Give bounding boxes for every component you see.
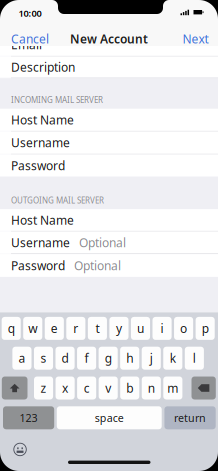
button[interactable]: g: [99, 347, 118, 370]
staticText: Username: [11, 135, 70, 151]
staticText: u: [137, 320, 144, 336]
staticText: Host Name: [11, 212, 74, 228]
button[interactable]: Emoji keyboard: [14, 443, 26, 456]
button[interactable]: k: [163, 347, 182, 370]
button[interactable]: c: [77, 376, 96, 399]
staticText: k: [170, 350, 176, 366]
button[interactable]: return: [164, 406, 216, 429]
staticText: Password: [11, 158, 65, 173]
staticText: b: [126, 380, 133, 396]
staticText: Optional: [74, 257, 121, 273]
button[interactable]: Cancel: [11, 31, 49, 47]
staticText: x: [62, 380, 68, 396]
staticText: New Account: [70, 31, 148, 47]
button[interactable]: u: [131, 317, 150, 340]
button[interactable]: Shift: [2, 376, 27, 399]
button[interactable]: Username: [0, 132, 218, 154]
button[interactable]: p: [196, 317, 215, 340]
button[interactable]: Delete: [191, 376, 216, 399]
button[interactable]: h: [120, 347, 139, 370]
button[interactable]: n: [142, 376, 161, 399]
staticText: c: [84, 380, 90, 396]
staticText: s: [40, 350, 46, 366]
button[interactable]: j: [142, 347, 161, 370]
staticText: i: [161, 320, 164, 336]
staticText: t: [95, 320, 99, 336]
staticText: n: [148, 380, 155, 396]
staticText: r: [73, 320, 78, 336]
button[interactable]: Host Name: [0, 209, 218, 231]
button[interactable]: Password: [0, 254, 218, 277]
staticText: Password: [11, 257, 65, 273]
button[interactable]: t: [88, 317, 107, 340]
staticText: a: [18, 350, 25, 366]
button[interactable]: e: [45, 317, 64, 340]
button[interactable]: o: [174, 317, 193, 340]
staticText: q: [8, 320, 15, 336]
staticText: l: [193, 350, 196, 366]
button[interactable]: Username: [0, 232, 218, 253]
button[interactable]: Host Name: [0, 109, 218, 131]
staticText: o: [180, 320, 187, 336]
staticText: Cancel: [11, 31, 49, 47]
staticText: Optional: [79, 234, 126, 250]
staticText: p: [202, 320, 209, 336]
button[interactable]: v: [99, 376, 118, 399]
staticText: g: [105, 350, 112, 366]
button[interactable]: q: [2, 317, 21, 340]
staticText: space: [95, 411, 124, 425]
staticText: f: [85, 350, 89, 366]
staticText: z: [40, 380, 46, 396]
button[interactable]: z: [34, 376, 53, 399]
staticText: OUTGOING MAIL SERVER: [11, 195, 104, 206]
button[interactable]: w: [23, 317, 42, 340]
button[interactable]: m: [163, 376, 182, 399]
staticText: j: [150, 350, 153, 366]
staticText: Description: [11, 59, 75, 75]
staticText: h: [126, 350, 133, 366]
staticText: 10:00: [18, 7, 41, 19]
staticText: Host Name: [11, 112, 74, 128]
staticText: Email: [11, 37, 42, 53]
staticText: w: [28, 320, 37, 336]
staticText: Username: [11, 234, 70, 250]
button[interactable]: x: [55, 376, 75, 399]
staticText: 123: [20, 411, 38, 425]
button[interactable]: Description: [0, 57, 218, 78]
button[interactable]: f: [77, 347, 96, 370]
button[interactable]: i: [152, 317, 172, 340]
staticText: e: [51, 320, 58, 336]
staticText: m: [167, 380, 178, 396]
button[interactable]: b: [120, 376, 139, 399]
button[interactable]: a: [12, 347, 31, 370]
button[interactable]: l: [185, 347, 204, 370]
button[interactable]: y: [109, 317, 128, 340]
staticText: d: [61, 350, 68, 366]
staticText: Next: [182, 31, 208, 47]
staticText: INCOMING MAIL SERVER: [11, 95, 103, 105]
button[interactable]: s: [34, 347, 53, 370]
button[interactable]: Password: [0, 154, 218, 177]
button[interactable]: d: [55, 347, 75, 370]
button[interactable]: r: [66, 317, 85, 340]
button[interactable]: space: [57, 406, 162, 429]
staticText: v: [105, 380, 111, 396]
button[interactable]: Next: [0, 31, 208, 47]
staticText: y: [116, 320, 122, 336]
button[interactable]: 123: [3, 406, 54, 429]
staticText: return: [174, 411, 206, 425]
